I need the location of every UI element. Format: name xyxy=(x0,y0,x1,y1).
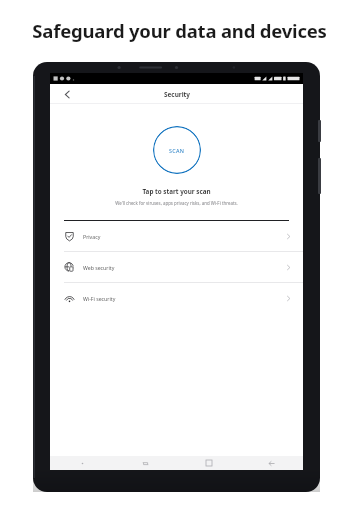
button[interactable]: Recent apps xyxy=(177,456,240,470)
button[interactable]: Privacy xyxy=(50,221,303,251)
button[interactable]: Wi-Fi security xyxy=(50,283,303,313)
staticText: SCAN xyxy=(169,147,185,154)
button[interactable]: SCAN xyxy=(153,126,201,174)
button[interactable]: Switch apps xyxy=(114,456,177,470)
staticText: We'll check for viruses, apps privacy ri… xyxy=(76,200,277,206)
button[interactable]: Web security xyxy=(50,252,303,282)
staticText: Tap to start your scan xyxy=(50,187,303,196)
staticText: Security xyxy=(164,90,190,99)
button[interactable]: Back xyxy=(59,86,75,102)
staticText: Privacy xyxy=(83,233,285,240)
button[interactable]: Back xyxy=(240,456,303,470)
staticText: Wi-Fi security xyxy=(83,295,285,302)
staticText: Web security xyxy=(83,264,285,271)
staticText: Safeguard your data and devices xyxy=(32,18,327,43)
